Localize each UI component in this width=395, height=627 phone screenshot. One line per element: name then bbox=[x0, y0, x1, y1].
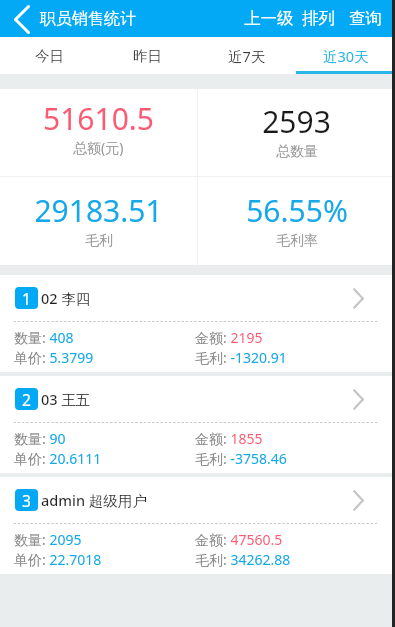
button[interactable]: 近30天 bbox=[296, 37, 395, 74]
staticText: 职员销售统计 bbox=[40, 9, 136, 29]
other: 详情 bbox=[351, 286, 365, 310]
button[interactable]: 昨日 bbox=[98, 37, 197, 74]
button[interactable]: 2 bbox=[0, 376, 395, 473]
staticText: 金额: 47560.5 bbox=[195, 530, 283, 549]
staticText: 56.55% bbox=[246, 190, 348, 231]
staticText: 03 王五 bbox=[41, 389, 91, 409]
button[interactable]: 2593 bbox=[198, 89, 395, 176]
staticText: 毛利: -3758.46 bbox=[195, 449, 287, 468]
staticText: 2593 bbox=[262, 101, 331, 142]
button[interactable]: 1 bbox=[0, 275, 395, 372]
staticText: 1 bbox=[22, 288, 31, 309]
staticText: 3 bbox=[22, 490, 31, 511]
button[interactable]: 29183.51 bbox=[0, 177, 197, 265]
button[interactable]: 3 bbox=[0, 477, 395, 574]
staticText: 29183.51 bbox=[34, 190, 163, 231]
button[interactable]: 上一级 bbox=[241, 5, 297, 32]
staticText: 单价: 5.3799 bbox=[14, 348, 94, 367]
staticText: admin 超级用户 bbox=[41, 490, 147, 510]
button[interactable]: 近7天 bbox=[197, 37, 296, 74]
staticText: 毛利率 bbox=[276, 232, 318, 250]
button[interactable]: 今日 bbox=[0, 37, 98, 74]
staticText: 51610.5 bbox=[43, 98, 154, 139]
staticText: 单价: 22.7018 bbox=[14, 550, 102, 569]
staticText: 查询 bbox=[349, 8, 382, 29]
button[interactable]: 职员销售统计 bbox=[35, 9, 140, 29]
staticText: 毛利: -1320.91 bbox=[195, 348, 287, 367]
button[interactable]: 排列 bbox=[299, 5, 338, 32]
other: 详情 bbox=[351, 387, 365, 411]
other: 详情 bbox=[351, 488, 365, 512]
staticText: 总数量 bbox=[276, 143, 318, 161]
staticText: 2 bbox=[22, 389, 31, 410]
staticText: 总额(元) bbox=[73, 138, 124, 157]
button[interactable]: 返回 bbox=[9, 2, 35, 36]
button[interactable]: 51610.5 bbox=[0, 89, 197, 176]
staticText: 排列 bbox=[302, 8, 335, 29]
staticText: 近7天 bbox=[228, 46, 266, 66]
staticText: 近30天 bbox=[323, 46, 369, 66]
staticText: 金额: 1855 bbox=[195, 429, 263, 448]
staticText: 单价: 20.6111 bbox=[14, 449, 102, 468]
staticText: 毛利 bbox=[85, 232, 113, 250]
staticText: 上一级 bbox=[244, 8, 294, 29]
staticText: 数量: 90 bbox=[14, 429, 66, 448]
button[interactable]: 查询 bbox=[346, 5, 385, 32]
staticText: 毛利: 34262.88 bbox=[195, 550, 291, 569]
staticText: 金额: 2195 bbox=[195, 328, 263, 347]
staticText: 昨日 bbox=[133, 47, 162, 65]
staticText: 数量: 2095 bbox=[14, 530, 82, 549]
staticText: 数量: 408 bbox=[14, 328, 74, 347]
staticText: 02 李四 bbox=[41, 288, 91, 308]
button[interactable]: 56.55% bbox=[198, 177, 395, 265]
staticText: 今日 bbox=[35, 47, 64, 65]
